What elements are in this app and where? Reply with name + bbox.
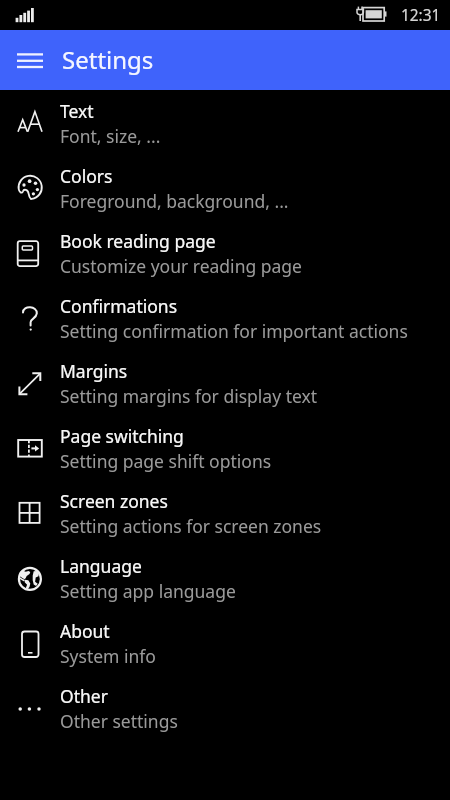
button[interactable]: Colors (0, 161, 450, 226)
staticText: Other settings (60, 709, 178, 733)
button[interactable]: Text (0, 96, 450, 161)
staticText: Text (60, 99, 94, 123)
button[interactable]: Book reading page (0, 226, 450, 291)
staticText: Colors (60, 164, 113, 188)
staticText: Setting page shift options (60, 449, 272, 473)
staticText: Customize your reading page (60, 254, 302, 278)
staticText: Language (60, 554, 142, 578)
staticText: Settings (62, 43, 154, 76)
button[interactable]: Open navigation menu (8, 38, 52, 82)
staticText: System info (60, 644, 156, 668)
staticText: Foreground, background, ... (60, 189, 289, 213)
staticText: Font, size, ... (60, 124, 161, 148)
button[interactable]: Language (0, 551, 450, 616)
staticText: Other (60, 684, 108, 708)
staticText: Page switching (60, 424, 184, 448)
button[interactable]: Other (0, 681, 450, 746)
staticText: Margins (60, 359, 128, 383)
staticText: Confirmations (60, 294, 178, 318)
staticText: Setting confirmation for important actio… (60, 319, 408, 343)
staticText: 12:31 (401, 5, 441, 26)
staticText: About (60, 619, 110, 643)
button[interactable]: Screen zones (0, 486, 450, 551)
staticText: Setting margins for display text (60, 384, 318, 408)
button[interactable]: Page switching (0, 421, 450, 486)
staticText: Book reading page (60, 229, 216, 253)
staticText: Setting actions for screen zones (60, 514, 322, 538)
button[interactable]: About (0, 616, 450, 681)
button[interactable]: Margins (0, 356, 450, 421)
staticText: Setting app language (60, 579, 236, 603)
button[interactable]: Confirmations (0, 291, 450, 356)
staticText: Screen zones (60, 489, 168, 513)
